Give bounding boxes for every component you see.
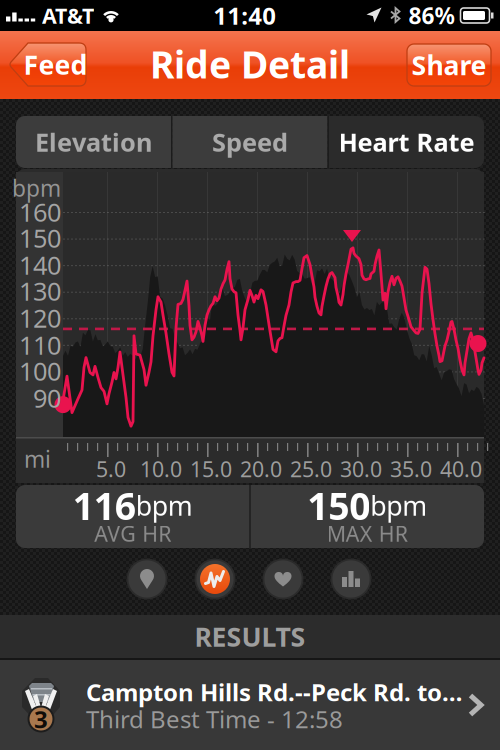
staticText: RESULTS (194, 619, 305, 654)
staticText: Share (411, 47, 486, 83)
staticText: bpm (136, 488, 193, 523)
staticText: bpm (370, 488, 427, 523)
staticText: Third Best Time - 12:58 (86, 703, 343, 735)
staticText: Heart Rate (338, 125, 474, 159)
staticText: Feed (23, 47, 87, 82)
staticText: 40.0 (440, 455, 482, 483)
button[interactable]: Speed (172, 116, 327, 168)
staticText: AT&T (42, 1, 94, 30)
staticText: mi (24, 444, 51, 474)
staticText: 20.0 (240, 455, 282, 483)
staticText: Ride Detail (150, 39, 350, 89)
button[interactable]: Statistics (329, 557, 373, 601)
staticText: 3 (34, 703, 48, 735)
staticText: 116 (73, 481, 136, 530)
button[interactable]: Map (125, 557, 169, 601)
staticText: 140 (19, 248, 61, 282)
staticText: AVG HR (94, 519, 171, 548)
staticText: 10.0 (140, 455, 182, 483)
staticText: Speed (212, 125, 288, 159)
button[interactable]: Heart Rate (193, 557, 237, 601)
staticText: 30.0 (340, 455, 382, 483)
button[interactable]: Feed (7, 43, 87, 86)
staticText: 11:40 (213, 0, 276, 31)
staticText: 5.0 (96, 455, 126, 483)
button[interactable]: Elevation (16, 116, 171, 168)
button[interactable]: Heart Rate (329, 116, 484, 168)
staticText: MAX HR (327, 519, 408, 548)
staticText: 86% (408, 0, 454, 30)
staticText: 130 (19, 274, 61, 308)
button[interactable]: Favorites (261, 557, 305, 601)
staticText: 100 (19, 354, 61, 388)
staticText: Campton Hills Rd.--Peck Rd. to… (86, 676, 463, 708)
staticText: bpm (12, 173, 61, 203)
staticText: 160 (19, 195, 61, 229)
staticText: 110 (19, 328, 61, 362)
button[interactable]: 3 (0, 660, 500, 750)
staticText: 120 (19, 301, 61, 335)
staticText: 15.0 (190, 455, 232, 483)
button[interactable]: Share (407, 44, 491, 86)
staticText: 150 (19, 221, 61, 255)
staticText: 150 (307, 481, 370, 530)
staticText: Elevation (35, 125, 152, 159)
staticText: 90 (33, 381, 61, 415)
staticText: 25.0 (290, 455, 332, 483)
staticText: 35.0 (390, 455, 432, 483)
